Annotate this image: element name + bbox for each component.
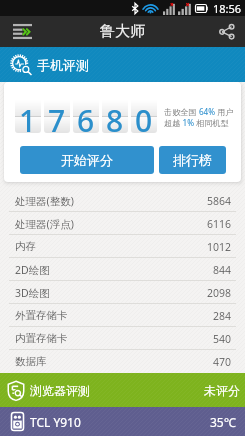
staticText: 540	[213, 332, 232, 346]
staticText: 排行榜	[173, 152, 212, 168]
staticText: 35℃	[210, 414, 236, 430]
staticText: 3D绘图	[15, 286, 50, 300]
button[interactable]: 处理器(浮点)	[0, 212, 245, 235]
staticText: 470	[213, 355, 232, 369]
staticText: 2D绘图	[15, 263, 50, 277]
staticText: 0	[135, 100, 153, 133]
staticText: 844	[213, 263, 232, 277]
button[interactable]: 排行榜	[159, 146, 226, 174]
staticText: 6116	[207, 217, 232, 231]
staticText: 开始评分	[61, 152, 113, 168]
button[interactable]: TCL Y910	[0, 407, 245, 436]
staticText: 内存	[15, 240, 36, 253]
staticText: 手机评测	[37, 57, 89, 73]
staticText: 1012	[207, 240, 232, 254]
button[interactable]: 2D绘图	[0, 258, 245, 281]
button[interactable]: 内置存储卡	[0, 327, 245, 350]
staticText: 18:56	[213, 1, 242, 16]
staticText: 1	[19, 100, 37, 133]
staticText: TCL Y910	[30, 414, 81, 430]
button[interactable]: Share	[208, 16, 245, 47]
staticText: 284	[213, 309, 232, 323]
button[interactable]: 浏览器评测	[0, 373, 245, 407]
staticText: 7	[48, 100, 66, 133]
staticText: 2098	[207, 286, 232, 300]
staticText: 内置存储卡	[15, 332, 68, 345]
staticText: 外置存储卡	[15, 309, 68, 322]
button[interactable]: 外置存储卡	[0, 304, 245, 327]
staticText: 鲁大师	[100, 22, 145, 41]
staticText: 超越 1% 相同机型	[164, 117, 229, 128]
button[interactable]: 内存	[0, 235, 245, 258]
button[interactable]: 开始评分	[20, 146, 154, 174]
staticText: 处理器(整数)	[15, 194, 74, 208]
button[interactable]: 处理器(整数)	[0, 189, 245, 212]
staticText: 数据库	[15, 355, 47, 368]
button[interactable]: Menu	[0, 16, 45, 47]
staticText: 未评分	[204, 383, 240, 398]
staticText: 浏览器评测	[30, 383, 90, 398]
button[interactable]: 3D绘图	[0, 281, 245, 304]
staticText: 6	[77, 100, 95, 133]
staticText: 处理器(浮点)	[15, 217, 74, 231]
staticText: 5864	[207, 194, 232, 208]
button[interactable]: 数据库	[0, 350, 245, 373]
staticText: 击败全国 64% 用户	[164, 106, 234, 117]
staticText: 8	[106, 100, 124, 133]
